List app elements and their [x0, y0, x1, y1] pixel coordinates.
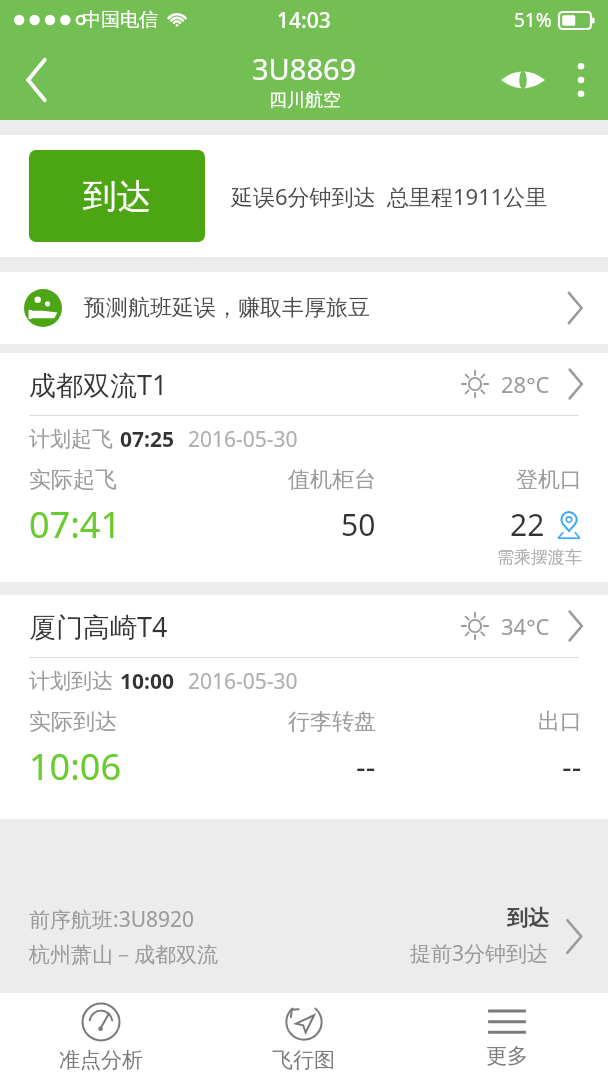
- staticText: 厦门高崎T4: [29, 608, 168, 645]
- staticText: 2016-05-30: [188, 425, 298, 454]
- staticText: 计划到达: [29, 668, 113, 694]
- staticText: 计划起飞: [29, 426, 113, 452]
- staticText: 28°C: [501, 369, 550, 399]
- staticText: 到达: [83, 175, 151, 218]
- staticText: 10:00: [120, 667, 174, 696]
- staticText: 中国电信: [82, 8, 158, 32]
- staticText: 实际到达: [29, 708, 117, 736]
- button[interactable]: 更多: [405, 993, 608, 1080]
- staticText: 延误6分钟到达 总里程1911公里: [231, 181, 548, 211]
- staticText: 14:03: [277, 6, 331, 35]
- staticText: 50: [341, 504, 376, 545]
- button[interactable]: 准点分析: [0, 993, 202, 1080]
- staticText: 值机柜台: [288, 466, 376, 494]
- button[interactable]: 飞行图: [202, 993, 405, 1080]
- button[interactable]: 成都双流T1: [0, 353, 608, 415]
- staticText: 07:41: [29, 500, 122, 549]
- button[interactable]: 预测航班延误，赚取丰厚旅豆: [0, 272, 608, 344]
- button[interactable]: Back: [0, 40, 74, 120]
- staticText: 10:06: [29, 742, 122, 791]
- staticText: 行李转盘: [288, 708, 376, 736]
- staticText: 3U8869: [252, 49, 357, 88]
- staticText: 51%: [514, 7, 552, 33]
- button[interactable]: 到达: [29, 150, 205, 242]
- staticText: 到达: [507, 905, 549, 931]
- staticText: 前序航班:3U8920: [29, 905, 195, 934]
- staticText: 飞行图: [272, 1047, 335, 1073]
- staticText: 需乘摆渡车: [497, 547, 582, 568]
- staticText: 出口: [538, 708, 582, 736]
- button[interactable]: 前序航班:3U8920: [0, 880, 608, 993]
- staticText: 四川航空: [269, 89, 341, 112]
- button[interactable]: More options: [554, 40, 608, 120]
- staticText: 实际起飞: [29, 466, 117, 494]
- button[interactable]: 厦门高崎T4: [0, 595, 608, 657]
- staticText: --: [562, 746, 582, 787]
- staticText: 提前3分钟到达: [410, 939, 549, 968]
- staticText: 2016-05-30: [188, 667, 298, 696]
- staticText: 登机口: [516, 466, 582, 494]
- staticText: 07:25: [120, 425, 174, 454]
- staticText: 成都双流T1: [29, 366, 168, 403]
- staticText: 更多: [486, 1043, 528, 1069]
- staticText: 准点分析: [59, 1047, 143, 1073]
- staticText: 杭州萧山－成都双流: [29, 942, 218, 968]
- staticText: 预测航班延误，赚取丰厚旅豆: [84, 294, 370, 322]
- staticText: --: [356, 746, 376, 787]
- staticText: 34°C: [501, 611, 550, 641]
- button[interactable]: Watch flight: [492, 40, 554, 120]
- staticText: 22: [510, 504, 545, 545]
